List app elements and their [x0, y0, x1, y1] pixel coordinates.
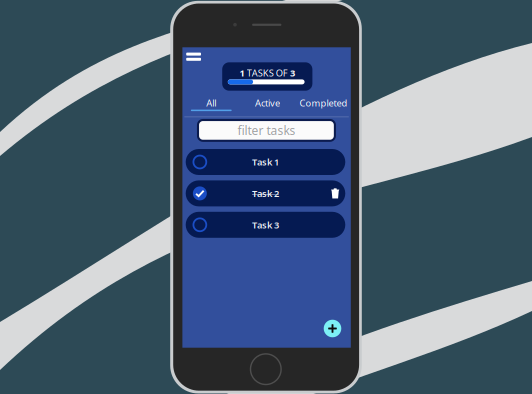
staticText: 3: [290, 67, 295, 79]
staticText: TASKS OF: [247, 67, 288, 79]
button[interactable]: Task 2: [186, 180, 345, 206]
button[interactable]: Task 3: [186, 212, 345, 238]
staticText: Task 1: [252, 156, 279, 168]
staticText: Completed: [299, 97, 347, 109]
button[interactable]: Completed: [295, 98, 352, 116]
staticText: Active: [255, 97, 280, 109]
staticText: All: [206, 97, 216, 109]
button[interactable]: filter tasks: [198, 120, 335, 141]
button[interactable]: Add task: [324, 320, 341, 337]
staticText: 1: [240, 67, 245, 79]
button[interactable]: Task 1: [186, 149, 345, 175]
staticText: Task 2: [252, 187, 279, 200]
staticText: Task 3: [252, 219, 279, 231]
button[interactable]: Menu: [184, 51, 203, 63]
button[interactable]: Active: [239, 98, 295, 116]
button[interactable]: All: [183, 98, 239, 116]
staticText: filter tasks: [237, 122, 295, 138]
